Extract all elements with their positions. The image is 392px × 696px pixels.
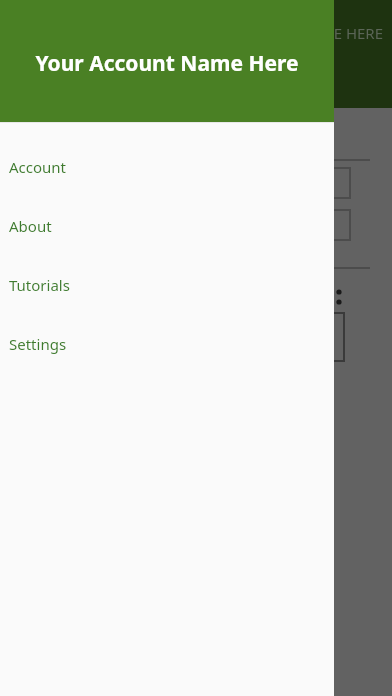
button[interactable]: Settings: [0, 329, 334, 359]
button[interactable]: About: [0, 211, 334, 241]
staticText: Account: [9, 157, 67, 177]
staticText: About: [9, 216, 52, 236]
button[interactable]: Your Account Name Here: [0, 0, 334, 122]
staticText: Your Account Name Here: [0, 49, 334, 78]
staticText: Settings: [9, 334, 67, 354]
button[interactable]: Account: [0, 152, 334, 182]
staticText: Tutorials: [9, 275, 70, 295]
button[interactable]: Tutorials: [0, 270, 334, 300]
staticText: YOUR ACCOUNT NAME HERE: [181, 23, 384, 43]
